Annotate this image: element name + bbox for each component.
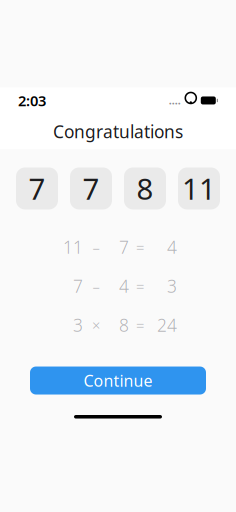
staticText: 3	[73, 313, 83, 336]
button[interactable]: 11	[178, 167, 220, 209]
staticText: 8	[119, 313, 129, 336]
staticText: 4	[167, 235, 177, 258]
staticText: Congratulations	[53, 120, 183, 143]
staticText: 7	[82, 169, 99, 208]
button[interactable]: 7	[70, 167, 112, 209]
staticText: 11	[182, 169, 216, 208]
staticText: ×	[92, 315, 100, 335]
staticText: =	[136, 276, 144, 296]
staticText: Continue	[83, 370, 152, 391]
staticText: 4	[119, 274, 129, 297]
button[interactable]: 8	[124, 167, 166, 209]
staticText: 8	[136, 169, 153, 208]
staticText: 3	[167, 274, 177, 297]
staticText: =	[136, 237, 144, 257]
staticText: 24	[157, 313, 177, 336]
staticText: 11	[63, 235, 83, 258]
staticText: 7	[73, 274, 83, 297]
staticText: 7	[28, 169, 45, 208]
staticText: ....	[169, 93, 181, 108]
staticText: –	[92, 276, 99, 296]
staticText: 2:03	[18, 91, 46, 110]
button[interactable]: 7	[16, 167, 58, 209]
staticText: =	[136, 315, 144, 335]
staticText: –	[92, 237, 99, 257]
staticText: 7	[119, 235, 129, 258]
button[interactable]: Continue	[30, 366, 206, 394]
